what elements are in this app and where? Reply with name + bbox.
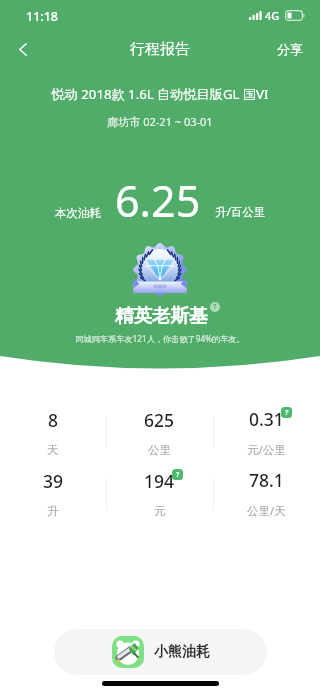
button[interactable]: 返回 xyxy=(0,30,46,68)
staticText: 小熊油耗 xyxy=(154,643,210,661)
staticText: 同城同车系车友121人，你击败了94%的车友。 xyxy=(0,333,320,344)
staticText: 4G xyxy=(265,8,280,23)
button[interactable]: 8 xyxy=(0,402,106,463)
button[interactable]: 0.31 xyxy=(213,402,320,463)
button[interactable]: 分享 xyxy=(260,30,320,68)
staticText: 11:18 xyxy=(26,8,59,25)
staticText: 分享 xyxy=(277,41,303,57)
button[interactable]: 小熊油耗 xyxy=(54,629,267,675)
staticText: 行程报告 xyxy=(130,40,190,59)
staticText: 悦动 2018款 1.6L 自动悦目版GL 国VI xyxy=(0,85,320,103)
staticText: ? xyxy=(213,302,217,312)
button[interactable]: 39 xyxy=(0,463,106,524)
staticText: 78.1 xyxy=(249,468,284,492)
staticText: 廊坊市 02-21 ~ 03-01 xyxy=(0,114,320,129)
button[interactable]: 625 xyxy=(106,402,213,463)
staticText: 精英老斯基 xyxy=(115,304,208,327)
staticText: 升 xyxy=(47,504,59,518)
staticText: 公里 xyxy=(148,443,171,457)
staticText: 625 xyxy=(144,408,175,432)
button[interactable]: 等级徽章 xyxy=(133,245,187,299)
staticText: 8 xyxy=(48,408,59,432)
staticText: 公里/天 xyxy=(247,503,286,519)
staticText: 元 xyxy=(154,504,166,518)
staticText: 元/公里 xyxy=(247,442,286,458)
staticText: 本次油耗 xyxy=(55,206,101,220)
button[interactable]: 78.1 xyxy=(213,463,320,524)
staticText: ? xyxy=(176,470,180,480)
staticText: ? xyxy=(285,408,289,418)
staticText: 194 xyxy=(144,469,175,493)
staticText: 39 xyxy=(43,469,64,493)
staticText: 天 xyxy=(47,443,59,457)
staticText: 6.25 xyxy=(115,171,201,217)
staticText: 升/百公里 xyxy=(215,204,266,220)
staticText: 0.31 xyxy=(249,407,284,431)
button[interactable]: 194 xyxy=(106,463,213,524)
